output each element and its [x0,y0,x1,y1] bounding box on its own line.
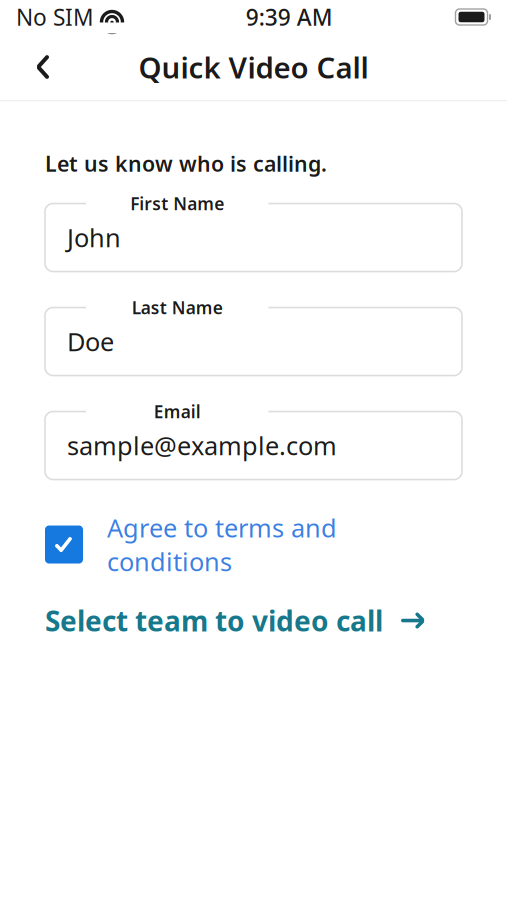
staticText: John [67,221,121,254]
staticText: First Name [130,192,224,215]
button[interactable]: Back [16,40,70,94]
staticText: Agree to terms and conditions [107,511,337,578]
staticText: Quick Video Call [138,47,368,86]
staticText: No SIM [16,2,94,32]
staticText: Select team to video call [45,602,383,639]
staticText: Email [154,400,201,423]
staticText: sample@example.com [67,429,337,462]
staticText: Doe [67,325,114,358]
staticText: Let us know who is calling. [45,149,327,177]
staticText: 9:39 AM [246,2,333,32]
button[interactable]: Select team to video call [45,598,462,642]
staticText: Last Name [132,296,223,319]
button[interactable]: Agree to terms and conditions [45,522,462,566]
